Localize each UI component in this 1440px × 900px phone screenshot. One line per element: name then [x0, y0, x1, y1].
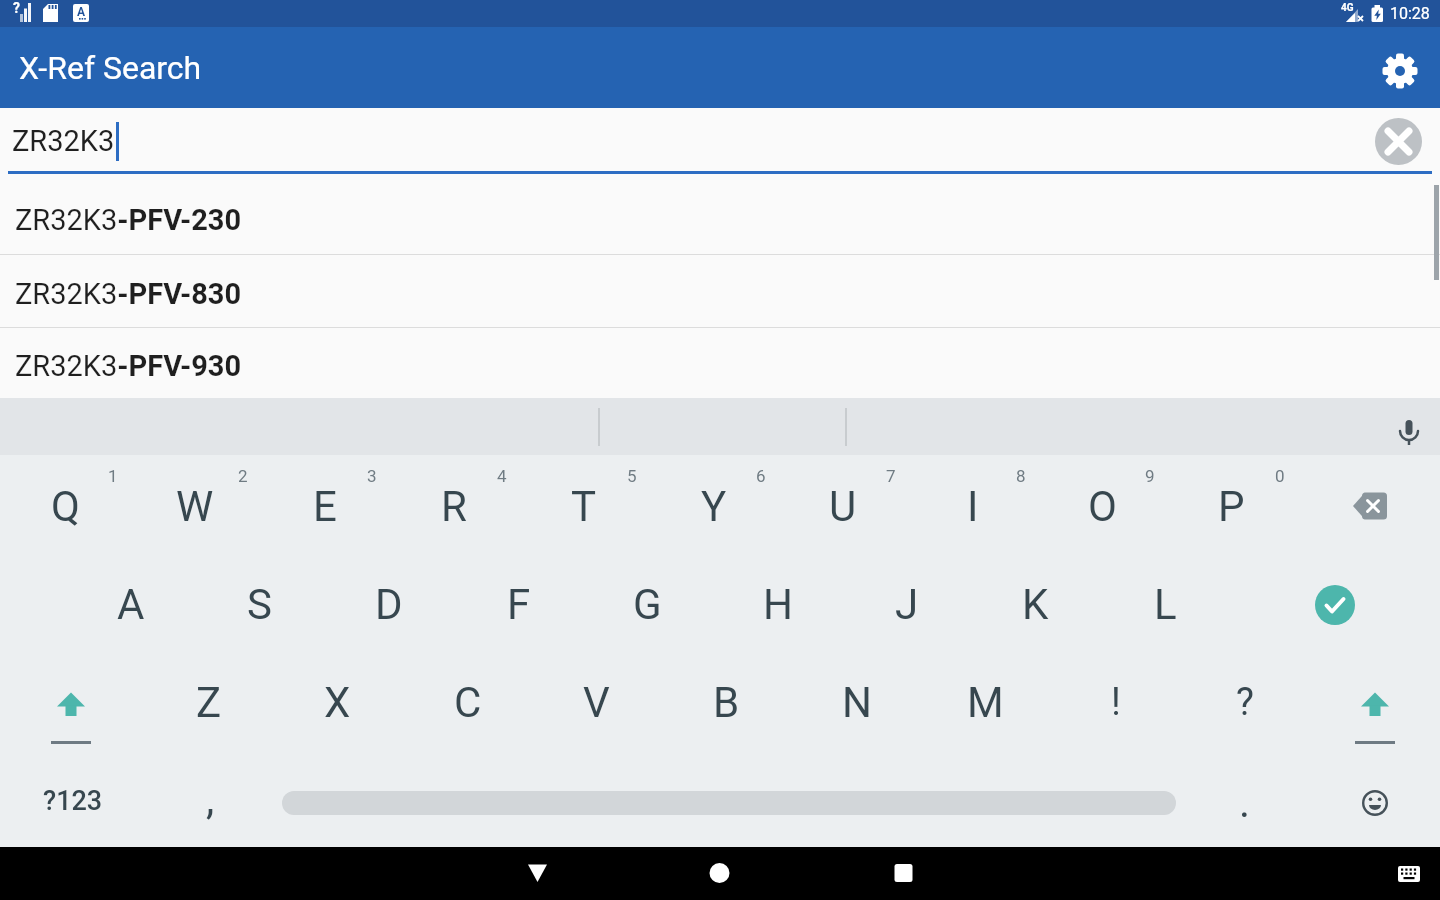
- button[interactable]: X: [275, 654, 400, 750]
- staticText: Z: [196, 678, 222, 727]
- button[interactable]: R: [391, 458, 516, 554]
- staticText: X-Ref Search: [19, 49, 202, 87]
- button[interactable]: G: [585, 556, 710, 652]
- button[interactable]: U: [780, 458, 905, 554]
- staticText: 5: [627, 466, 637, 486]
- button[interactable]: ,: [155, 751, 265, 847]
- button[interactable]: J: [844, 556, 969, 652]
- staticText: ZR32K3-PFV-230: [15, 203, 242, 237]
- staticText: 10:28: [1390, 4, 1430, 23]
- button[interactable]: ?: [1190, 654, 1300, 750]
- button[interactable]: .: [1190, 754, 1300, 850]
- staticText: ?123: [43, 785, 103, 817]
- staticText: C: [454, 678, 482, 727]
- staticText: E: [313, 482, 337, 531]
- button[interactable]: ZR32K3-PFV-830: [0, 255, 1440, 328]
- staticText: 6: [756, 466, 766, 486]
- button[interactable]: ZR32K3-PFV-930: [0, 328, 1440, 398]
- button[interactable]: F: [456, 556, 581, 652]
- button[interactable]: Q: [3, 458, 128, 554]
- staticText: A: [77, 5, 86, 19]
- button[interactable]: H: [715, 556, 840, 652]
- button[interactable]: W: [132, 458, 257, 554]
- button[interactable]: [1375, 118, 1422, 165]
- staticText: N: [842, 678, 872, 727]
- staticText: Y: [701, 482, 727, 531]
- staticText: P: [1218, 482, 1245, 531]
- staticText: I: [967, 482, 979, 531]
- staticText: K: [1022, 580, 1049, 629]
- staticText: 4: [497, 466, 507, 486]
- button[interactable]: M: [923, 654, 1048, 750]
- staticText: G: [633, 580, 662, 629]
- staticText: O: [1088, 482, 1117, 531]
- button[interactable]: [1310, 461, 1430, 551]
- staticText: 4G: [1341, 2, 1354, 14]
- button[interactable]: I: [910, 458, 1035, 554]
- staticText: ZR32K3: [12, 124, 115, 158]
- button[interactable]: [1373, 44, 1427, 98]
- button[interactable]: E: [262, 458, 387, 554]
- staticText: D: [375, 580, 403, 629]
- button[interactable]: [11, 660, 131, 750]
- button[interactable]: B: [664, 654, 789, 750]
- staticText: 8: [1016, 466, 1026, 486]
- button[interactable]: Y: [651, 458, 776, 554]
- button[interactable]: O: [1040, 458, 1165, 554]
- button[interactable]: [1315, 660, 1435, 750]
- staticText: ?: [13, 0, 20, 16]
- button[interactable]: [1387, 404, 1432, 449]
- button[interactable]: [1320, 758, 1430, 848]
- button[interactable]: ZR32K3-PFV-230: [0, 174, 1440, 254]
- staticText: .: [1239, 778, 1251, 827]
- staticText: ?: [1236, 680, 1254, 725]
- button[interactable]: K: [973, 556, 1098, 652]
- button[interactable]: T: [521, 458, 646, 554]
- staticText: R: [441, 482, 467, 531]
- button[interactable]: [510, 847, 565, 900]
- staticText: J: [895, 580, 919, 629]
- staticText: 9: [1145, 466, 1155, 486]
- button[interactable]: N: [794, 654, 919, 750]
- staticText: S: [247, 580, 272, 629]
- staticText: H: [763, 580, 793, 629]
- button[interactable]: [1280, 560, 1390, 650]
- staticText: U: [829, 482, 857, 531]
- button[interactable]: A: [68, 556, 193, 652]
- staticText: A: [117, 580, 145, 629]
- button[interactable]: V: [534, 654, 659, 750]
- button[interactable]: S: [197, 556, 322, 652]
- button[interactable]: D: [326, 556, 451, 652]
- staticText: V: [583, 678, 610, 727]
- staticText: F: [507, 580, 531, 629]
- staticText: M: [967, 678, 1004, 727]
- button[interactable]: ?123: [8, 753, 138, 849]
- staticText: ZR32K3-PFV-930: [15, 349, 242, 383]
- staticText: T: [571, 482, 597, 531]
- staticText: B: [713, 678, 740, 727]
- staticText: ZR32K3-PFV-830: [15, 277, 242, 311]
- staticText: 1: [108, 466, 118, 486]
- staticText: X: [324, 678, 351, 727]
- button[interactable]: [876, 847, 931, 900]
- button[interactable]: L: [1103, 556, 1228, 652]
- button[interactable]: P: [1169, 458, 1294, 554]
- staticText: W: [176, 482, 214, 531]
- staticText: 7: [886, 466, 896, 486]
- staticText: Q: [51, 482, 80, 531]
- button[interactable]: [692, 847, 747, 900]
- staticText: ,: [206, 775, 215, 824]
- staticText: 2: [238, 466, 248, 486]
- staticText: 3: [367, 466, 377, 486]
- staticText: 0: [1275, 466, 1285, 486]
- button[interactable]: [1384, 847, 1434, 900]
- button[interactable]: Z: [146, 654, 271, 750]
- button[interactable]: C: [405, 654, 530, 750]
- staticText: L: [1154, 580, 1177, 629]
- staticText: !: [1111, 680, 1121, 725]
- button[interactable]: !: [1061, 654, 1171, 750]
